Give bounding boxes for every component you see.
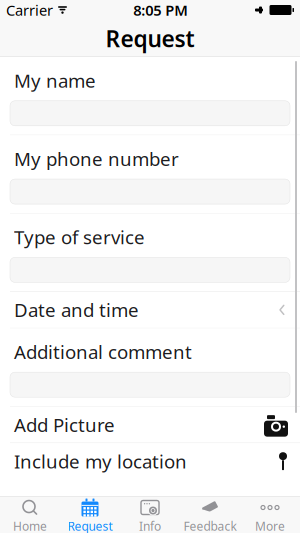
- staticText: Request: [105, 23, 194, 53]
- button[interactable]: Date and time: [0, 292, 300, 328]
- button[interactable]: Type of service: [0, 214, 300, 291]
- button[interactable]: Additional comment: [0, 328, 300, 406]
- button[interactable]: Home: [0, 499, 60, 533]
- button[interactable]: Info: [120, 499, 180, 533]
- staticText: Info: [139, 518, 161, 533]
- staticText: 8:05 PM: [133, 0, 188, 20]
- staticText: My phone number: [14, 146, 179, 171]
- staticText: Type of service: [14, 225, 145, 249]
- staticText: Date and time: [14, 297, 139, 322]
- button[interactable]: More: [240, 499, 300, 533]
- staticText: My name: [14, 68, 96, 93]
- staticText: Add Picture: [14, 412, 115, 437]
- staticText: Include my location: [14, 449, 187, 474]
- staticText: Request: [67, 518, 112, 533]
- button[interactable]: My phone number: [0, 135, 300, 213]
- staticText: Additional comment: [14, 339, 192, 364]
- button[interactable]: Add Picture: [0, 407, 300, 443]
- staticText: Home: [13, 518, 47, 533]
- button[interactable]: My name: [0, 57, 300, 135]
- button[interactable]: Feedback: [180, 499, 240, 533]
- staticText: Carrier: [6, 0, 53, 20]
- staticText: Feedback: [183, 518, 236, 533]
- button[interactable]: Request: [60, 499, 120, 533]
- staticText: More: [255, 518, 285, 533]
- button[interactable]: Include my location: [0, 443, 300, 479]
